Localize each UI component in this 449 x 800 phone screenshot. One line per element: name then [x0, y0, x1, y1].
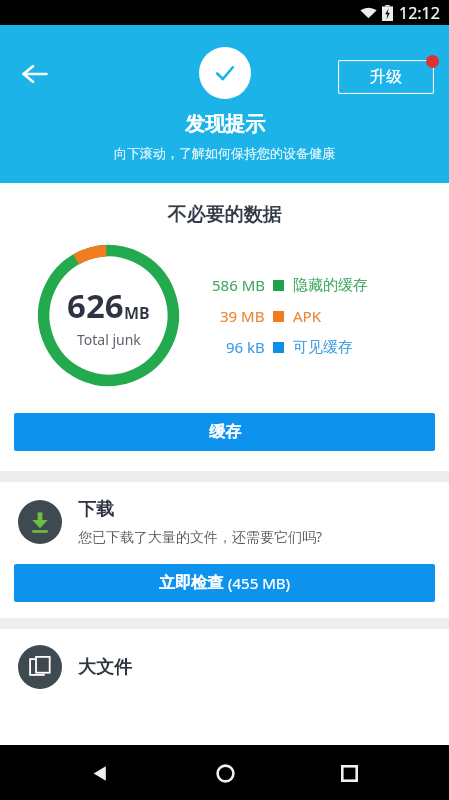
button[interactable]: 96 kB [193, 337, 353, 357]
button[interactable]: 586 MB [193, 275, 368, 295]
staticText: 12:12 [399, 2, 440, 24]
staticText: 您已下载了大量的文件，还需要它们吗? [78, 527, 323, 546]
button[interactable]: Back [76, 749, 124, 797]
button[interactable]: Recent apps [325, 749, 373, 797]
staticText: 可见缓存 [293, 338, 353, 357]
staticText: 不必要的数据 [0, 203, 449, 227]
staticText: 39 MB [220, 306, 265, 326]
staticText: 立即检查 [159, 573, 223, 593]
button[interactable]: 升级 [338, 60, 434, 94]
button[interactable]: 立即检查 [14, 564, 435, 602]
staticText: APK [293, 306, 321, 326]
staticText: 96 kB [226, 337, 265, 357]
staticText: 586 MB [212, 275, 265, 295]
staticText: 缓存 [209, 422, 241, 442]
staticText: MB [124, 302, 150, 324]
button[interactable]: Back [12, 51, 58, 97]
staticText: 发现提示 [185, 112, 265, 137]
button[interactable]: Home [201, 749, 249, 797]
staticText: 隐藏的缓存 [293, 276, 368, 295]
staticText: 大文件 [78, 656, 132, 679]
button[interactable]: 大文件 [0, 645, 449, 689]
staticText: (455 MB) [228, 573, 290, 593]
staticText: Total junk [77, 330, 141, 349]
button[interactable]: 缓存 [14, 413, 435, 451]
staticText: 下载 [78, 498, 114, 521]
staticText: 升级 [370, 67, 402, 87]
staticText: 626 [67, 283, 124, 328]
staticText: 向下滚动，了解如何保持您的设备健康 [114, 145, 335, 161]
button[interactable]: 下载 [0, 498, 449, 546]
button[interactable]: 39 MB [193, 306, 321, 326]
